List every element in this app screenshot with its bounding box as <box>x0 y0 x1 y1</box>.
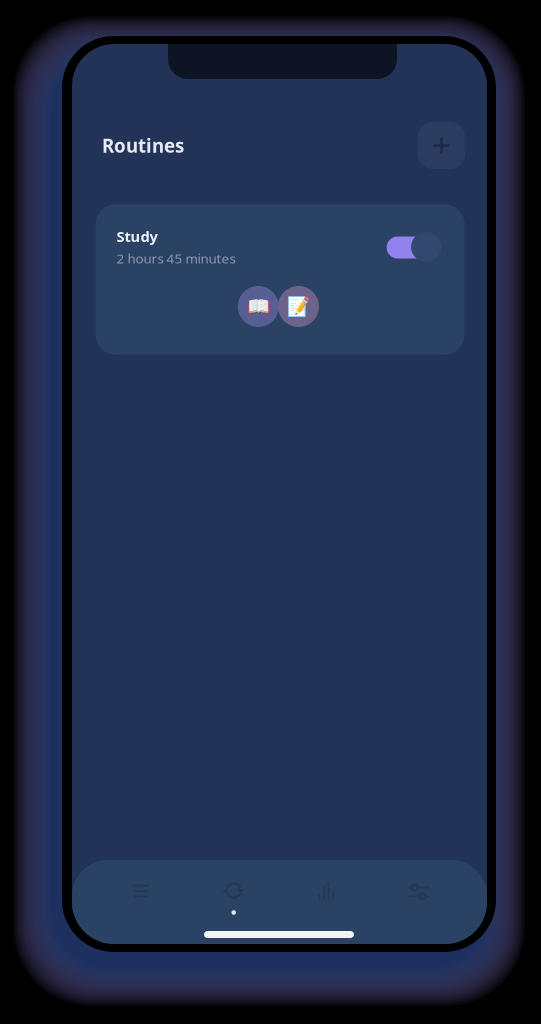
staticText: 📝 <box>287 296 310 317</box>
staticText: 📖 <box>247 296 270 317</box>
staticText: Study <box>117 226 158 246</box>
staticText: Routines <box>102 133 184 158</box>
button[interactable]: Toggle routine <box>387 231 441 262</box>
button[interactable]: Add routine <box>418 122 465 169</box>
staticText: 2 hours 45 minutes <box>117 249 236 267</box>
button[interactable]: Routines <box>187 863 280 919</box>
